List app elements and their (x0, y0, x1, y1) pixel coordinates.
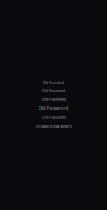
staticText: Old Password (41, 97, 65, 102)
staticText: Old Password (42, 89, 65, 93)
staticText: At least 8 characters (35, 124, 71, 129)
staticText: Old Password (43, 81, 64, 85)
staticText: Old Password (41, 115, 65, 120)
staticText: Old Password (38, 106, 68, 111)
